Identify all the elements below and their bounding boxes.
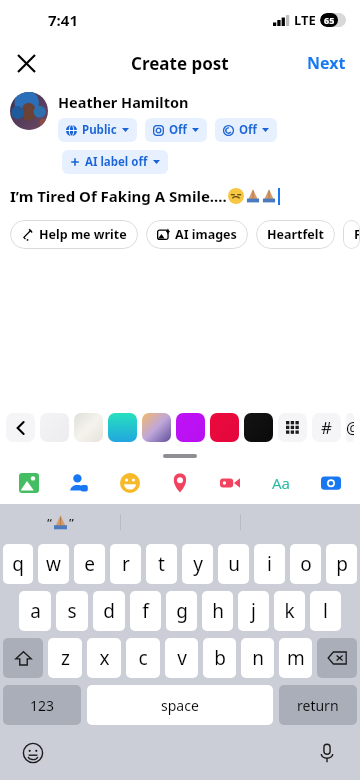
staticText: ” [69,515,74,530]
button[interactable]: AI label off [62,150,168,174]
button[interactable]: Back [6,413,35,442]
button[interactable]: Background colour [40,413,69,442]
staticText: h [212,598,224,624]
button[interactable]: w [38,544,69,584]
staticText: AI label off [85,154,148,170]
button[interactable]: “ [0,504,120,540]
button[interactable]: Photo [12,466,46,500]
button[interactable]: z [48,638,82,678]
button[interactable]: e [74,544,105,584]
button[interactable]: Close [6,43,46,83]
button[interactable]: Background colour [176,413,205,442]
button[interactable]: l [310,591,341,631]
button[interactable]: i [254,544,285,584]
button[interactable]: Fix grammar [343,220,360,249]
button[interactable]: Backspace [317,638,357,678]
staticText: # [321,416,332,439]
staticText: j [251,598,256,624]
button[interactable]: Heartfelt [256,220,335,249]
staticText: w [46,551,61,577]
button[interactable]: c [126,638,160,678]
button[interactable]: p [326,544,357,584]
button[interactable]: Background colour [244,413,273,442]
button[interactable]: Location [163,466,197,500]
staticText: r [122,551,130,577]
button[interactable]: t [146,544,177,584]
button[interactable]: Background colour [210,413,239,442]
button[interactable]: o [290,544,321,584]
button[interactable]: k [274,591,305,631]
button[interactable]: n [241,638,274,678]
button[interactable]: Background colour [108,413,137,442]
staticText: c [138,645,148,671]
staticText: d [103,598,115,624]
staticText: LTE [294,11,316,29]
staticText: b [214,645,226,671]
staticText: “ [47,515,52,530]
staticText: q [12,551,24,577]
staticText: Public [82,122,117,138]
button[interactable]: Live video [213,466,247,500]
staticText: Next [307,52,346,74]
button[interactable]: More backgrounds [278,413,307,442]
button[interactable]: Shift [3,638,43,678]
staticText: g [176,598,188,624]
button[interactable]: Background colour [74,413,103,442]
staticText: s [67,598,77,624]
button[interactable]: Off [215,118,277,142]
button[interactable]: q [3,544,33,584]
staticText: return [297,696,339,715]
button[interactable]: m [279,638,312,678]
button[interactable]: Background colour [142,413,171,442]
staticText: Aa [272,473,291,493]
button[interactable]: f [130,591,161,631]
button[interactable]: u [218,544,249,584]
button[interactable]: h [202,591,233,631]
button[interactable]: Emoji keyboard [16,736,50,770]
button[interactable]: Hashtag [312,413,341,442]
button[interactable]: space [87,685,273,725]
button[interactable]: Public [58,118,137,142]
button[interactable]: x [87,638,121,678]
button[interactable]: Profile photo [10,92,48,130]
button[interactable]: d [93,591,125,631]
button[interactable]: s [56,591,88,631]
staticText: f [142,598,149,624]
staticText: o [300,551,312,577]
button[interactable]: b [203,638,236,678]
button[interactable]: Dictation [310,736,344,770]
button[interactable]: Tag people [62,466,96,500]
button[interactable]: Feeling [113,466,147,500]
staticText: 7:41 [48,10,78,30]
button[interactable]: a [19,591,51,631]
button[interactable]: return [279,685,357,725]
button[interactable]: Text style [264,466,298,500]
staticText: AI images [175,226,237,243]
button[interactable]: 123 [3,685,81,725]
staticText: l [323,598,328,624]
staticText: t [158,551,165,577]
staticText: Heartfelt [267,226,324,243]
button[interactable]: y [182,544,213,584]
button[interactable]: Off [145,118,207,142]
button[interactable]: Camera [314,466,348,500]
staticText: e [84,551,95,577]
staticText: space [161,696,199,715]
staticText: Help me write [39,226,127,243]
button[interactable]: r [110,544,141,584]
button[interactable]: AI images [146,220,248,249]
staticText: k [284,598,295,624]
button[interactable]: v [165,638,198,678]
button[interactable]: Help me write [10,220,138,249]
button[interactable]: j [238,591,269,631]
staticText: Heather Hamilton [58,92,189,112]
staticText: Create post [131,52,229,75]
button[interactable]: g [166,591,197,631]
button[interactable]: Next [293,42,360,84]
staticText: a [30,598,41,624]
staticText: I’m Tired Of Faking A Smile.... [10,186,227,206]
button[interactable]: Mention [346,413,354,442]
staticText: n [252,645,264,671]
